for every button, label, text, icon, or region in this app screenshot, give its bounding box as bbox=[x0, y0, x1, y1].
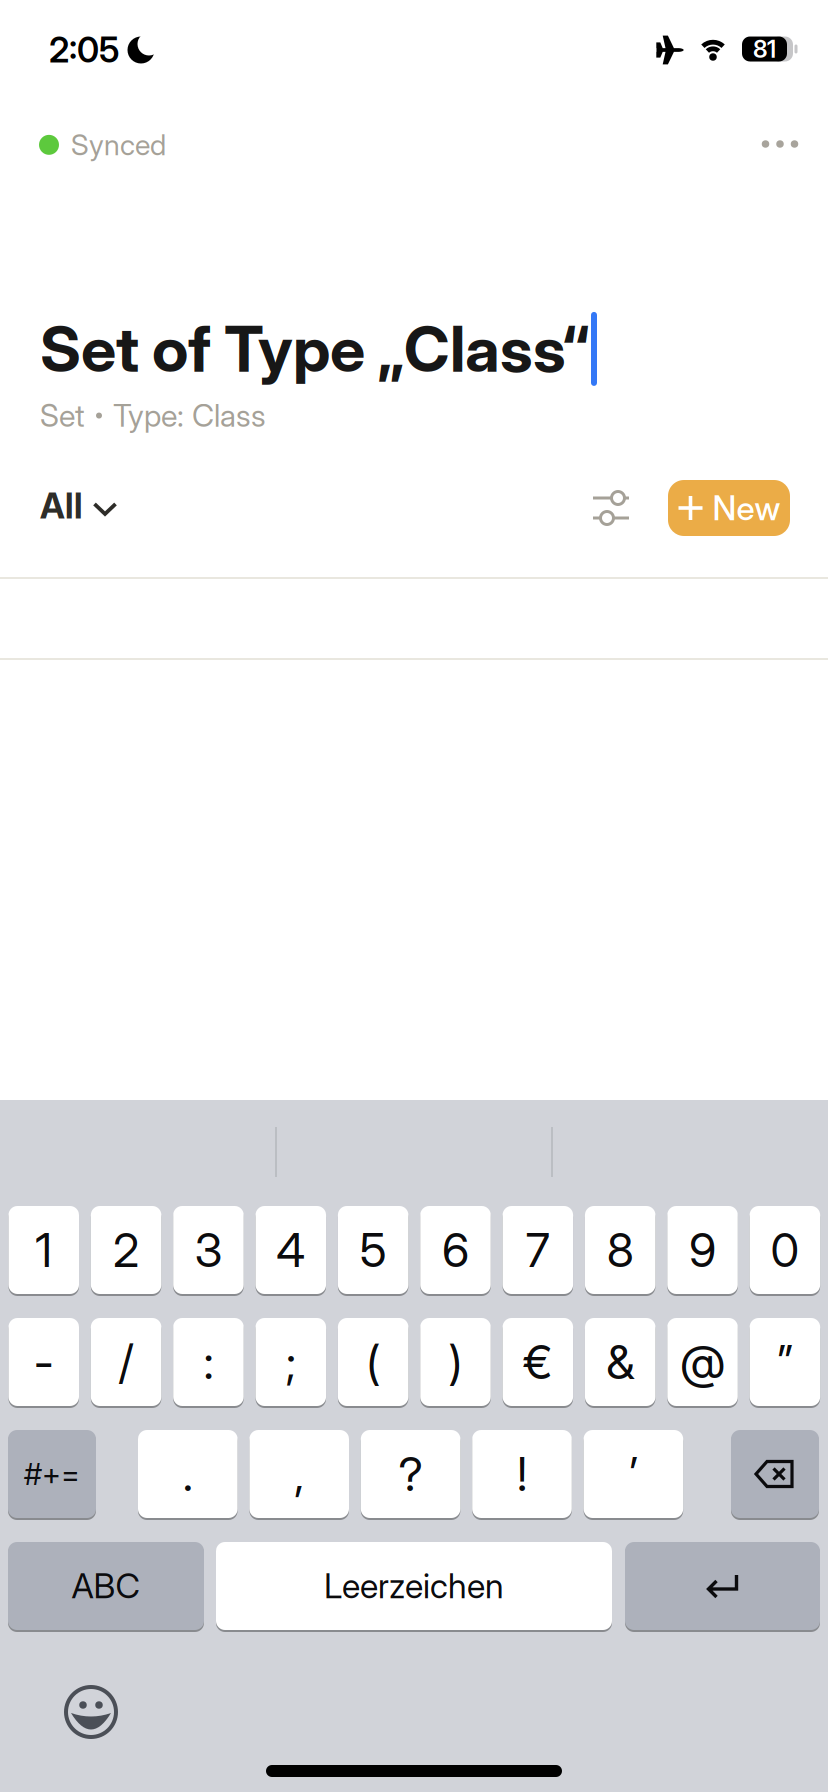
button[interactable]: ; bbox=[255, 1317, 326, 1407]
staticText: ! bbox=[517, 1446, 527, 1502]
staticText: € bbox=[523, 1334, 553, 1390]
button[interactable]: 4 bbox=[255, 1205, 326, 1295]
button[interactable]: . bbox=[138, 1429, 238, 1519]
button[interactable]: Filter settings bbox=[593, 493, 631, 522]
button[interactable]: 5 bbox=[338, 1205, 408, 1295]
button[interactable]: ( bbox=[338, 1317, 408, 1407]
staticText: 1 bbox=[35, 1222, 52, 1278]
button[interactable]: , bbox=[249, 1429, 349, 1519]
button[interactable]: 9 bbox=[667, 1205, 738, 1295]
button[interactable]: Synced bbox=[39, 127, 166, 162]
staticText: All bbox=[40, 485, 83, 527]
button[interactable]: : bbox=[173, 1317, 244, 1407]
staticText: 4 bbox=[276, 1222, 305, 1278]
staticText: . bbox=[183, 1446, 193, 1502]
staticText: 2:05 bbox=[49, 29, 119, 71]
staticText: 5 bbox=[360, 1222, 387, 1278]
button[interactable]: 0 bbox=[750, 1205, 820, 1295]
button[interactable]: @ bbox=[667, 1317, 738, 1407]
staticText: ( bbox=[366, 1334, 380, 1390]
button[interactable]: ABC bbox=[8, 1541, 204, 1631]
staticText: ’ bbox=[629, 1446, 638, 1502]
button[interactable]: 3 bbox=[173, 1205, 244, 1295]
button[interactable]: Leerzeichen bbox=[216, 1541, 612, 1631]
button[interactable]: ’ bbox=[584, 1429, 683, 1519]
button[interactable]: ? bbox=[361, 1429, 460, 1519]
button[interactable]: ) bbox=[420, 1317, 491, 1407]
staticText: ABC bbox=[71, 1565, 140, 1606]
staticText: ” bbox=[777, 1334, 793, 1390]
staticText: ; bbox=[286, 1334, 296, 1390]
button[interactable]: Return bbox=[625, 1541, 820, 1631]
staticText: / bbox=[119, 1334, 134, 1390]
staticText: Set of Type „Class“ bbox=[40, 311, 589, 387]
button[interactable]: More bbox=[750, 124, 810, 164]
button[interactable]: ” bbox=[750, 1317, 820, 1407]
button[interactable]: All bbox=[40, 485, 117, 527]
staticText: ? bbox=[399, 1446, 423, 1502]
staticText: @ bbox=[680, 1334, 725, 1390]
button[interactable]: 1 bbox=[8, 1205, 79, 1295]
staticText: #+= bbox=[24, 1456, 80, 1492]
staticText: Type: Class bbox=[113, 397, 266, 434]
staticText: : bbox=[203, 1334, 213, 1390]
button[interactable]: 2 bbox=[91, 1205, 161, 1295]
staticText: New bbox=[712, 488, 780, 528]
staticText: - bbox=[34, 1334, 54, 1390]
button[interactable]: Delete bbox=[731, 1429, 819, 1519]
staticText: Set bbox=[40, 397, 85, 434]
staticText: 0 bbox=[770, 1222, 799, 1278]
staticText: 2 bbox=[113, 1222, 139, 1278]
button[interactable]: #+= bbox=[8, 1429, 96, 1519]
button[interactable]: Emoji bbox=[63, 1684, 119, 1740]
staticText: ) bbox=[448, 1334, 462, 1390]
staticText: , bbox=[294, 1446, 304, 1502]
staticText: Leerzeichen bbox=[324, 1565, 504, 1606]
button[interactable]: - bbox=[8, 1317, 79, 1407]
button[interactable]: 8 bbox=[585, 1205, 655, 1295]
button[interactable]: € bbox=[503, 1317, 573, 1407]
button[interactable]: New bbox=[668, 480, 790, 536]
staticText: Synced bbox=[71, 127, 166, 162]
staticText: 7 bbox=[526, 1222, 550, 1278]
staticText: 81 bbox=[753, 34, 776, 63]
staticText: 6 bbox=[442, 1222, 469, 1278]
button[interactable]: / bbox=[91, 1317, 161, 1407]
button[interactable]: 7 bbox=[503, 1205, 573, 1295]
staticText: 9 bbox=[689, 1222, 716, 1278]
button[interactable]: 6 bbox=[420, 1205, 491, 1295]
button[interactable]: & bbox=[585, 1317, 655, 1407]
button[interactable]: ! bbox=[472, 1429, 572, 1519]
staticText: & bbox=[606, 1334, 634, 1390]
staticText: 8 bbox=[607, 1222, 634, 1278]
staticText: 3 bbox=[194, 1222, 222, 1278]
